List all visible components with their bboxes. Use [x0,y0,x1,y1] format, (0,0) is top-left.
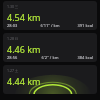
staticText: 28:03 [7,23,34,27]
button[interactable]: 1.28 日 [3,33,97,62]
staticText: 391 kcal [66,23,93,27]
staticText: 1.27 土 [7,68,19,73]
staticText: 6'2" / km [34,55,66,59]
button[interactable]: 1.30 三 [3,1,97,30]
staticText: 6'11" / km [34,23,66,27]
staticText: 4.44 km [7,75,41,87]
staticText: 28:56 [7,55,34,59]
staticText: 384 kcal [66,55,93,59]
staticText: 1.28 日 [7,36,19,41]
staticText: 4.54 km [7,11,41,23]
staticText: 4.46 km [7,43,41,55]
staticText: 1.30 三 [7,4,19,9]
button[interactable]: 1.27 土 [3,65,97,94]
